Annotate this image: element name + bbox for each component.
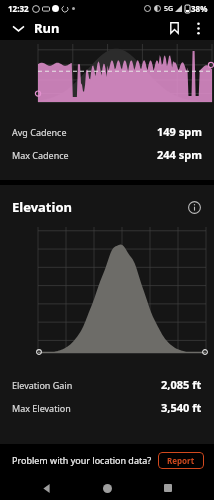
staticText: Max Elevation <box>12 402 71 414</box>
button[interactable]: Recents <box>153 476 183 500</box>
staticText: 12:32 <box>8 3 29 14</box>
staticText: 5G <box>164 4 174 14</box>
staticText: 38% <box>191 3 208 14</box>
staticText: Elevation <box>12 198 72 216</box>
button[interactable]: Collapse <box>6 16 30 40</box>
button[interactable]: Back <box>31 476 61 500</box>
staticText: Avg Cadence <box>12 126 67 138</box>
button[interactable]: Info <box>184 197 204 217</box>
staticText: Max Cadence <box>12 149 69 161</box>
button[interactable]: Bookmark <box>162 16 186 40</box>
staticText: Run <box>34 19 60 37</box>
button[interactable]: Max Cadence <box>0 143 214 166</box>
button[interactable]: Home <box>92 476 122 500</box>
staticText: 2,085 ft <box>161 377 202 392</box>
staticText: 244 spm <box>157 147 202 162</box>
button[interactable]: Report <box>158 452 204 469</box>
staticText: Report <box>167 455 195 466</box>
staticText: Problem with your location data? <box>12 454 152 466</box>
button[interactable]: Max Elevation <box>0 396 214 419</box>
staticText: Elevation Gain <box>12 379 73 391</box>
button[interactable]: Avg Cadence <box>0 120 214 143</box>
button[interactable]: More options <box>186 16 210 40</box>
staticText: 3,540 ft <box>161 400 202 415</box>
button[interactable]: Elevation Gain <box>0 373 214 396</box>
staticText: 149 spm <box>157 124 202 139</box>
